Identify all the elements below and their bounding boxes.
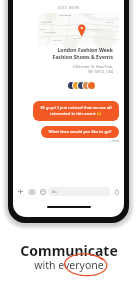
staticText: 3 Bleecker St, New York, NY 10012, USA: [72, 64, 113, 74]
button[interactable]: Camera: [26, 186, 37, 197]
button[interactable]: Like: [111, 186, 122, 197]
staticText: London Fashion Week: [57, 47, 113, 54]
staticText: Aa: [52, 189, 57, 194]
staticText: JUST NOW: [13, 5, 124, 10]
staticText: Fashion Shows & Events: [52, 54, 113, 61]
staticText: What time would you like to go?: [45, 129, 115, 135]
staticText: Hi guys! I just noticed that we are all …: [37, 105, 115, 117]
button[interactable]: Add: [15, 186, 26, 197]
staticText: Communicate: [20, 241, 118, 260]
button[interactable]: Stickers: [37, 186, 48, 197]
button[interactable]: What time would you like to go?: [41, 126, 119, 138]
button[interactable]: London Fashion Week: [38, 13, 119, 93]
staticText: with everyone: [34, 258, 104, 272]
staticText: ✓ Sent: [13, 139, 119, 143]
button[interactable]: Aa: [48, 187, 111, 196]
button[interactable]: Hi guys! I just noticed that we are all …: [33, 101, 119, 121]
